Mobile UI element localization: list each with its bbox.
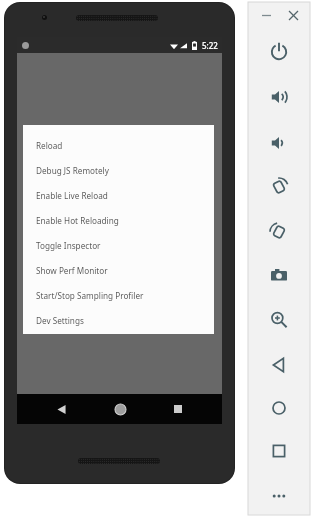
staticText: 5:22 xyxy=(202,40,218,51)
button[interactable]: Volume down xyxy=(248,126,310,160)
button[interactable]: Minimize xyxy=(255,4,277,26)
button[interactable]: Start/Stop Sampling Profiler xyxy=(23,283,214,308)
button[interactable]: Overview xyxy=(248,434,310,468)
button[interactable]: Zoom xyxy=(248,303,310,337)
button[interactable]: More xyxy=(248,479,310,513)
button[interactable]: Take screenshot xyxy=(248,258,310,292)
button[interactable]: Dev Settings xyxy=(23,308,214,333)
button[interactable]: Close xyxy=(282,4,304,26)
button[interactable]: Enable Hot Reloading xyxy=(23,208,214,233)
button[interactable]: Rotate right xyxy=(248,215,310,249)
staticText: Enable Hot Reloading xyxy=(36,215,119,226)
button[interactable]: Reload xyxy=(23,133,214,158)
staticText: Dev Settings xyxy=(36,315,84,326)
staticText: Toggle Inspector xyxy=(36,240,101,251)
button[interactable]: Enable Live Reload xyxy=(23,183,214,208)
staticText: Show Perf Monitor xyxy=(36,265,108,276)
button[interactable]: Back xyxy=(248,348,310,382)
button[interactable]: Power xyxy=(248,34,310,68)
staticText: Enable Live Reload xyxy=(36,190,108,201)
button[interactable]: Show Perf Monitor xyxy=(23,258,214,283)
staticText: Debug JS Remotely xyxy=(36,165,109,176)
button[interactable]: Volume up xyxy=(248,80,310,114)
staticText: Reload xyxy=(36,140,63,151)
button[interactable]: Toggle Inspector xyxy=(23,233,214,258)
button[interactable]: Rotate left xyxy=(248,170,310,204)
button[interactable]: Back xyxy=(46,394,76,424)
button[interactable]: Home xyxy=(105,394,135,424)
button[interactable]: Recent apps xyxy=(163,394,193,424)
button[interactable]: Home xyxy=(248,391,310,425)
staticText: Start/Stop Sampling Profiler xyxy=(36,290,144,301)
button[interactable]: Debug JS Remotely xyxy=(23,158,214,183)
